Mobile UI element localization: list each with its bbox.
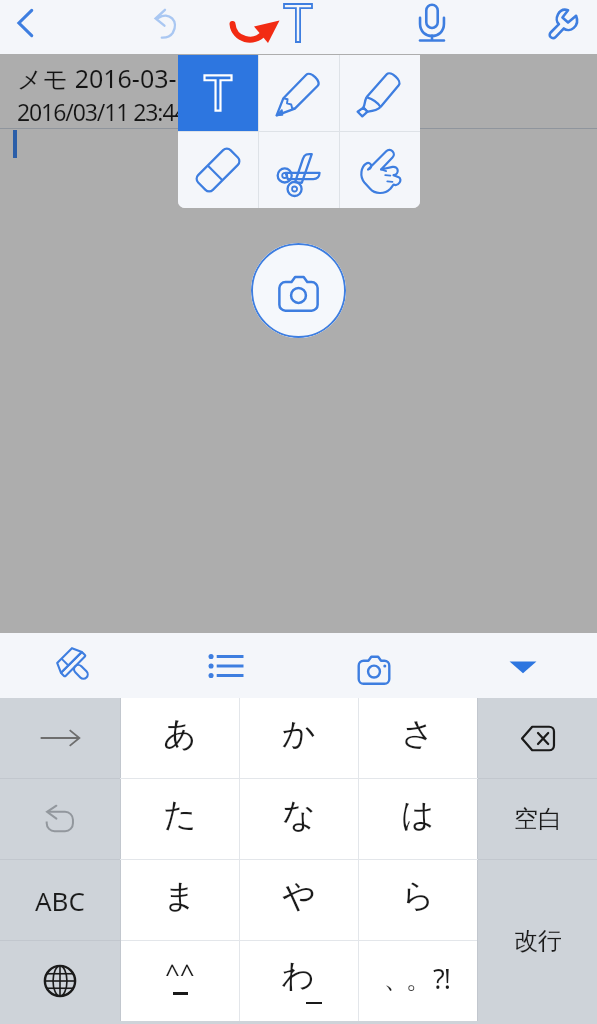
- button[interactable]: List: [150, 633, 299, 698]
- staticText: 空白: [514, 804, 562, 834]
- button[interactable]: あ: [121, 698, 239, 778]
- button[interactable]: Brush: [0, 633, 150, 698]
- button[interactable]: Hide keyboard: [448, 633, 597, 698]
- staticText: や: [282, 875, 316, 917]
- button[interactable]: ま: [121, 860, 239, 940]
- staticText: は: [401, 794, 435, 836]
- button[interactable]: Camera: [299, 633, 448, 698]
- staticText: メモ 2016-03-11: [17, 61, 206, 95]
- staticText: ま: [163, 875, 197, 917]
- staticText: わ: [281, 955, 315, 997]
- button[interactable]: 空白: [478, 779, 597, 859]
- staticText: ら: [401, 875, 435, 917]
- button[interactable]: や: [240, 860, 358, 940]
- button[interactable]: 、。: [359, 941, 477, 1021]
- staticText: 、。: [386, 962, 430, 996]
- button[interactable]: Eraser tool: [178, 132, 258, 208]
- button[interactable]: さ: [359, 698, 477, 778]
- button[interactable]: Cut tool: [259, 132, 339, 208]
- staticText: ^^: [165, 955, 195, 990]
- staticText: 改行: [514, 926, 562, 956]
- staticText: ABC: [35, 883, 85, 918]
- staticText: 2016/03/11 23:44:31: [17, 96, 216, 127]
- button[interactable]: Back: [0, 0, 50, 54]
- button[interactable]: 改行: [478, 860, 597, 1021]
- button[interactable]: [0, 779, 120, 859]
- button[interactable]: Text tool: [224, 0, 314, 54]
- button[interactable]: Text tool: [178, 55, 258, 131]
- button[interactable]: Hand tool: [340, 132, 420, 208]
- button[interactable]: Change keyboard: [0, 941, 120, 1021]
- button[interactable]: は: [359, 779, 477, 859]
- staticText: た: [163, 794, 197, 836]
- button[interactable]: な: [240, 779, 358, 859]
- button[interactable]: ABC: [0, 860, 120, 940]
- staticText: か: [282, 713, 316, 755]
- button[interactable]: Settings: [533, 0, 593, 54]
- button[interactable]: Take photo: [251, 243, 346, 338]
- button[interactable]: Pen tool: [259, 55, 339, 131]
- staticText: な: [282, 794, 316, 836]
- button[interactable]: [0, 698, 120, 778]
- button[interactable]: Undo: [138, 0, 194, 54]
- button[interactable]: Highlighter tool: [340, 55, 420, 131]
- staticText: あ: [163, 713, 197, 755]
- button[interactable]: た: [121, 779, 239, 859]
- button[interactable]: か: [240, 698, 358, 778]
- button[interactable]: Voice input: [404, 0, 460, 54]
- staticText: ?!: [433, 960, 450, 997]
- button[interactable]: ^^: [121, 941, 239, 1021]
- staticText: さ: [401, 713, 435, 755]
- button[interactable]: [478, 698, 597, 778]
- button[interactable]: ら: [359, 860, 477, 940]
- button[interactable]: わ: [240, 941, 358, 1021]
